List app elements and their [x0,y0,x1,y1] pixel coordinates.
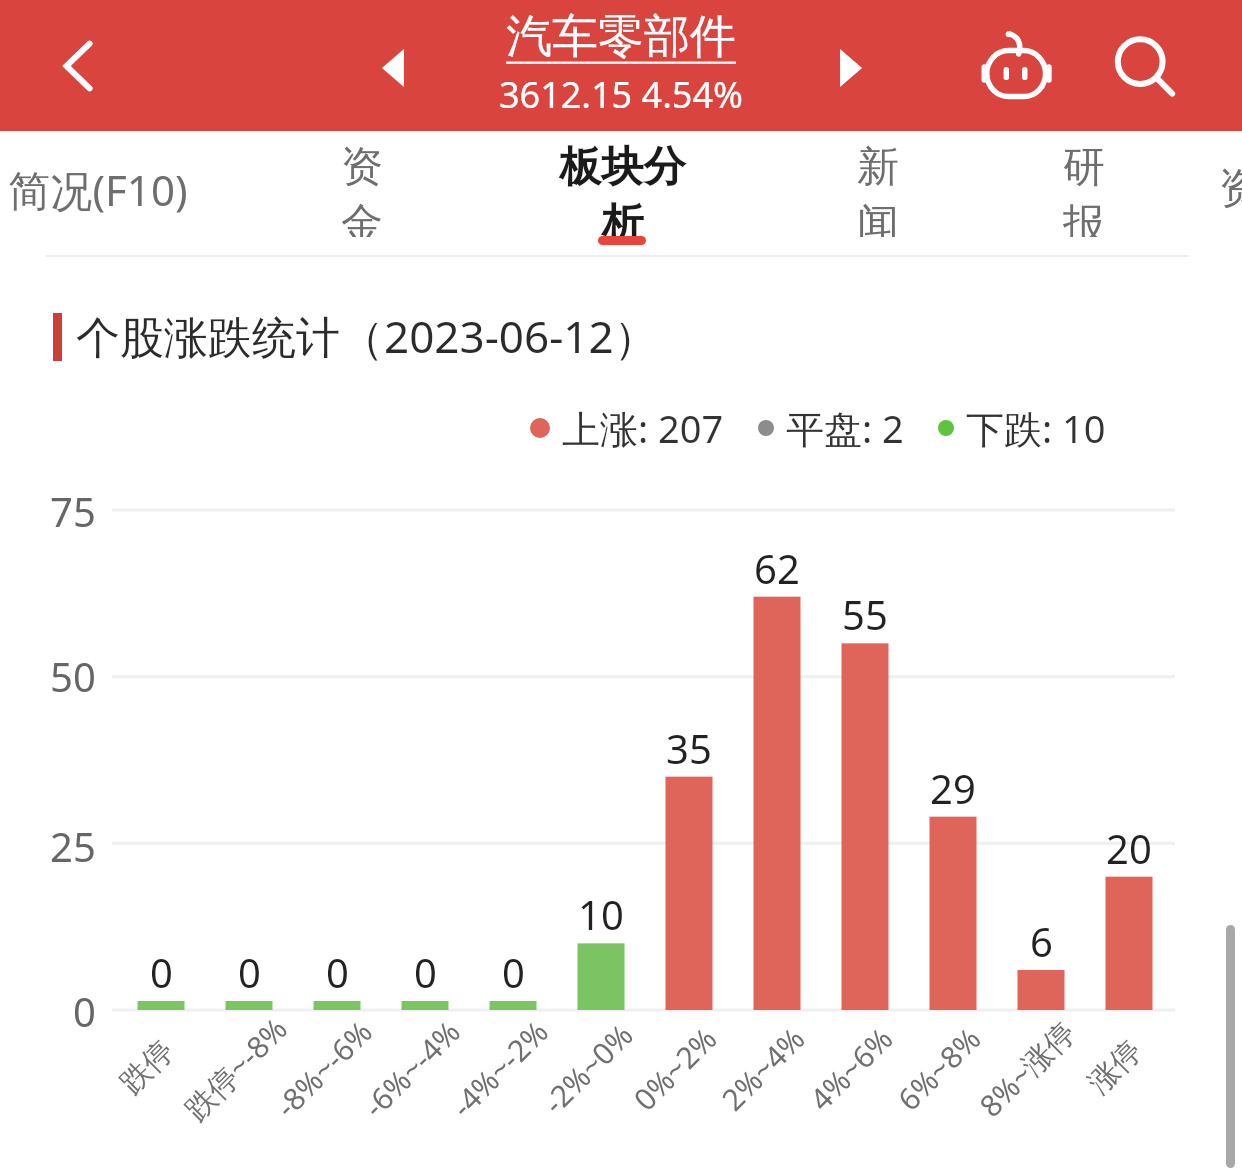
staticText: 0 [238,945,261,999]
button[interactable]: 资金 [321,141,403,237]
button[interactable]: AI assistant [975,26,1059,108]
staticText: 8%~涨停 [970,1012,1084,1125]
button[interactable]: 平盘: 2 [758,402,904,454]
button[interactable]: 简况(F10) [0,141,242,237]
button[interactable]: 上涨: 207 [530,402,724,454]
staticText: 平盘: 2 [786,402,904,454]
staticText: 0%~2% [624,1018,725,1119]
staticText: -4%~-2% [442,1011,557,1126]
staticText: 简况(F10) [8,161,188,218]
staticText: 2%~4% [712,1018,813,1119]
staticText: 0 [326,945,349,999]
button[interactable]: 下跌: 10 [938,402,1106,454]
staticText: 25 [50,819,96,873]
staticText: 个股涨跌统计（2023-06-12） [76,306,658,366]
button[interactable]: Back [40,26,120,106]
button[interactable]: 新闻 [837,141,919,237]
staticText: 6 [1030,914,1053,968]
staticText: 上涨: 207 [562,402,724,454]
staticText: 0 [150,945,173,999]
staticText: 汽车零部件 [506,8,736,66]
staticText: 新闻 [837,141,919,237]
button[interactable]: Previous sector [368,40,426,96]
staticText: 6%~8% [888,1018,989,1119]
staticText: 0 [73,984,96,1038]
staticText: 75 [50,484,96,538]
staticText: 板块分析 [540,141,705,237]
button[interactable]: 汽车零部件 [0,8,1242,119]
staticText: 跌停 [112,1032,182,1102]
staticText: 0 [414,945,437,999]
staticText: 0 [502,945,525,999]
staticText: -6%~-4% [354,1011,469,1126]
staticText: 29 [930,761,976,815]
staticText: -8%~-6% [266,1011,381,1126]
button[interactable]: Next sector [818,40,876,96]
staticText: 涨停 [1080,1032,1150,1102]
staticText: 35 [666,721,712,775]
staticText: 3612.15 4.54% [499,70,743,119]
button[interactable]: Search [1105,28,1185,108]
staticText: 4%~6% [800,1018,901,1119]
button[interactable]: 板块分析 [540,141,705,237]
staticText: 下跌: 10 [966,402,1106,454]
staticText: -2%~0% [534,1015,641,1122]
staticText: 跌停~-8% [175,1008,296,1129]
button[interactable]: 资 [1219,141,1242,237]
staticText: 62 [754,541,800,595]
staticText: 10 [578,887,624,941]
staticText: 资 [1219,163,1242,216]
button[interactable]: 研报 [1043,141,1125,237]
staticText: 20 [1106,821,1152,875]
staticText: 50 [50,649,96,703]
staticText: 资金 [321,141,403,237]
staticText: 研报 [1043,141,1125,237]
staticText: 55 [842,587,888,641]
